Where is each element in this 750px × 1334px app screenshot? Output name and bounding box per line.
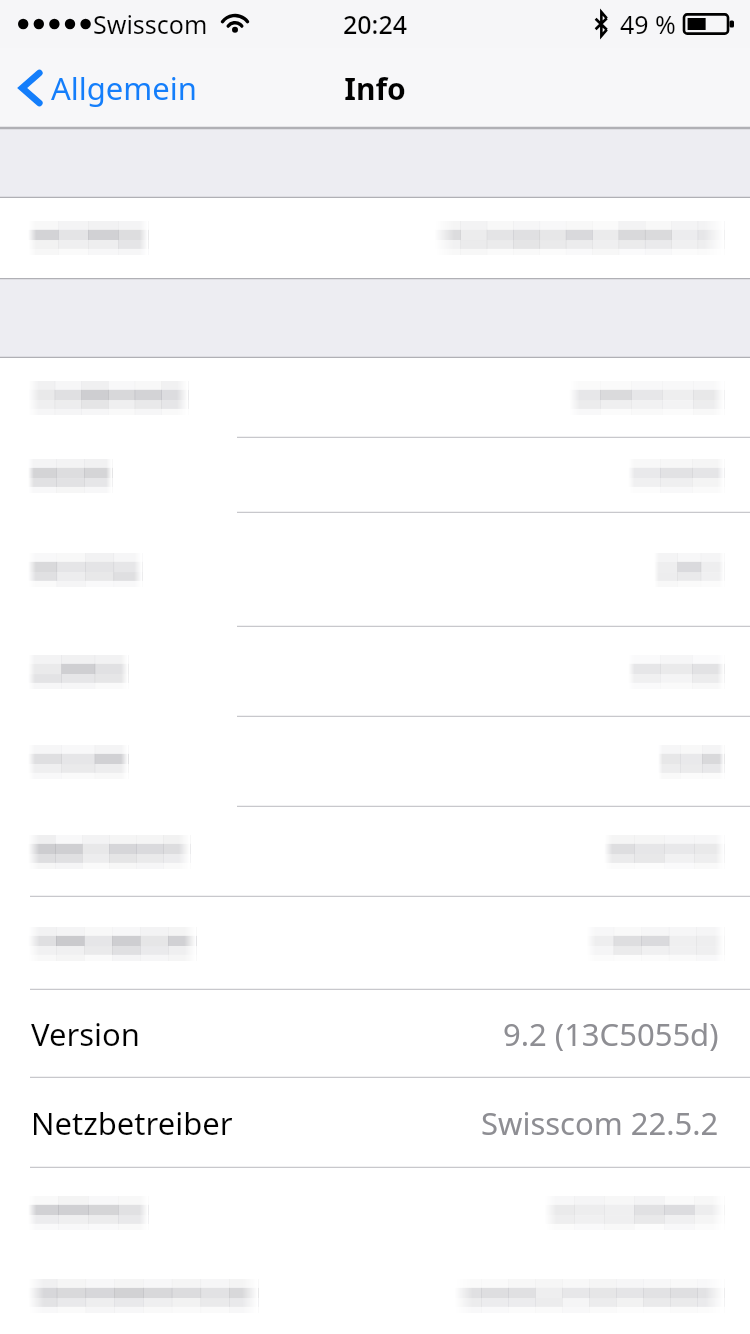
staticText: Allgemein bbox=[51, 67, 197, 109]
button[interactable] bbox=[0, 897, 750, 990]
button[interactable] bbox=[0, 358, 750, 438]
button[interactable] bbox=[0, 807, 750, 897]
button[interactable]: Version bbox=[0, 990, 750, 1078]
button[interactable] bbox=[0, 717, 750, 807]
button[interactable]: Allgemein bbox=[14, 60, 201, 116]
staticText: Netzbetreiber bbox=[31, 1102, 233, 1144]
button[interactable] bbox=[0, 198, 750, 278]
staticText: 20:24 bbox=[343, 7, 408, 41]
staticText: Info bbox=[344, 68, 406, 109]
button[interactable] bbox=[0, 513, 750, 627]
staticText: Version bbox=[31, 1013, 141, 1055]
staticText: Swisscom 22.5.2 bbox=[481, 1102, 719, 1144]
button[interactable] bbox=[0, 1168, 750, 1258]
staticText: 9.2 (13C5055d) bbox=[503, 1013, 719, 1055]
button[interactable]: Netzbetreiber bbox=[0, 1078, 750, 1168]
button[interactable] bbox=[0, 1258, 750, 1334]
staticText: Swisscom bbox=[93, 7, 208, 41]
staticText: 49 % bbox=[620, 7, 676, 41]
button[interactable] bbox=[0, 627, 750, 717]
button[interactable] bbox=[0, 438, 750, 513]
